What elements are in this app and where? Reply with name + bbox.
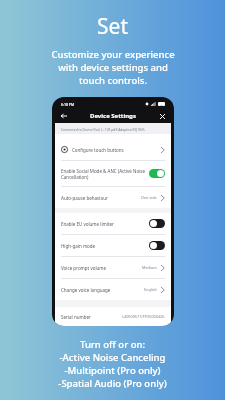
button[interactable]: High-gain mode	[55, 235, 171, 256]
button[interactable]: Change voice language	[55, 279, 171, 300]
staticText: Medium	[142, 265, 157, 270]
button[interactable]: Auto-pause behaviour	[55, 187, 171, 208]
staticText: Voice prompt volume	[61, 265, 139, 271]
button[interactable]: Close	[157, 111, 167, 121]
button[interactable]: Back	[59, 111, 69, 121]
button[interactable]: Configure touch buttons	[55, 139, 171, 160]
staticText: Device Settings	[90, 112, 136, 120]
button[interactable]: Toggle off	[149, 219, 165, 228]
staticText: 6:18 PM	[61, 102, 75, 107]
staticText: High-gain mode	[61, 243, 146, 249]
staticText: One side	[141, 195, 157, 200]
button[interactable]: Enable Social Mode & ANC (Active Noise C…	[55, 161, 171, 186]
staticText: Enable Social Mode & ANC (Active Noise C…	[61, 168, 146, 180]
staticText: Set	[97, 12, 128, 41]
staticText: Connected to Device Pod, L: 125 pdX Adap…	[61, 127, 145, 131]
button[interactable]: Toggle off	[149, 241, 165, 250]
staticText: L40000571/FP30000426	[122, 314, 165, 319]
button[interactable]: Serial number	[55, 307, 171, 326]
staticText: Enable EU volume limiter	[61, 221, 146, 227]
staticText: 70	[160, 103, 163, 106]
staticText: Customize your experience with device se…	[51, 48, 175, 87]
staticText: Serial number	[61, 314, 119, 320]
staticText: Auto-pause behaviour	[61, 195, 138, 201]
button[interactable]: Enable EU volume limiter	[55, 213, 171, 234]
staticText: Change voice language	[61, 287, 141, 293]
staticText: English	[144, 287, 157, 292]
button[interactable]: Voice prompt volume	[55, 257, 171, 278]
staticText: Turn off or on: -Active Noise Canceling …	[58, 338, 167, 390]
button[interactable]: Connected to Device Pod, L: 125 pdX Adap…	[55, 123, 171, 134]
button[interactable]: Toggle on	[149, 169, 165, 178]
staticText: Configure touch buttons	[72, 147, 157, 153]
